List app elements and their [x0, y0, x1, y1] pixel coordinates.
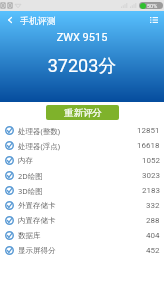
staticText: 332	[146, 201, 160, 210]
staticText: 2183	[142, 186, 160, 195]
staticText: 37203分	[0, 55, 164, 78]
button[interactable]: 2D绘图	[0, 168, 164, 183]
staticText: 处理器(浮点)	[18, 141, 60, 151]
staticText: 显示屏得分	[18, 246, 56, 255]
staticText: 外置存储卡	[18, 201, 56, 210]
staticText: 50%	[147, 3, 163, 9]
staticText: 404	[146, 231, 160, 240]
staticText: 452	[146, 246, 160, 255]
button[interactable]: 外置存储卡	[0, 198, 164, 213]
staticText: 288	[146, 216, 160, 225]
staticText: 内存	[18, 156, 33, 165]
button[interactable]: Menu	[147, 13, 161, 27]
button[interactable]: 内存	[0, 153, 164, 168]
staticText: 重新评分	[64, 107, 102, 119]
button[interactable]: 显示屏得分	[0, 243, 164, 258]
staticText: 2D绘图	[18, 171, 43, 181]
button[interactable]: 重新评分	[46, 105, 119, 120]
staticText: 1052	[142, 156, 160, 165]
button[interactable]: 内置存储卡	[0, 213, 164, 228]
staticText: 处理器(整数)	[18, 126, 60, 136]
button[interactable]: 3D绘图	[0, 183, 164, 198]
staticText: 16618	[137, 141, 160, 150]
button[interactable]: Back	[3, 13, 17, 27]
staticText: 数据库	[18, 231, 41, 240]
button[interactable]: 处理器(整数)	[0, 123, 164, 138]
staticText: ZWX 9515	[0, 31, 164, 44]
staticText: 3023	[142, 171, 160, 180]
staticText: 12851	[137, 126, 160, 135]
staticText: 3D绘图	[18, 186, 43, 196]
staticText: 内置存储卡	[18, 216, 56, 225]
staticText: 手机评测	[20, 15, 56, 26]
button[interactable]: 数据库	[0, 228, 164, 243]
button[interactable]: 处理器(浮点)	[0, 138, 164, 153]
